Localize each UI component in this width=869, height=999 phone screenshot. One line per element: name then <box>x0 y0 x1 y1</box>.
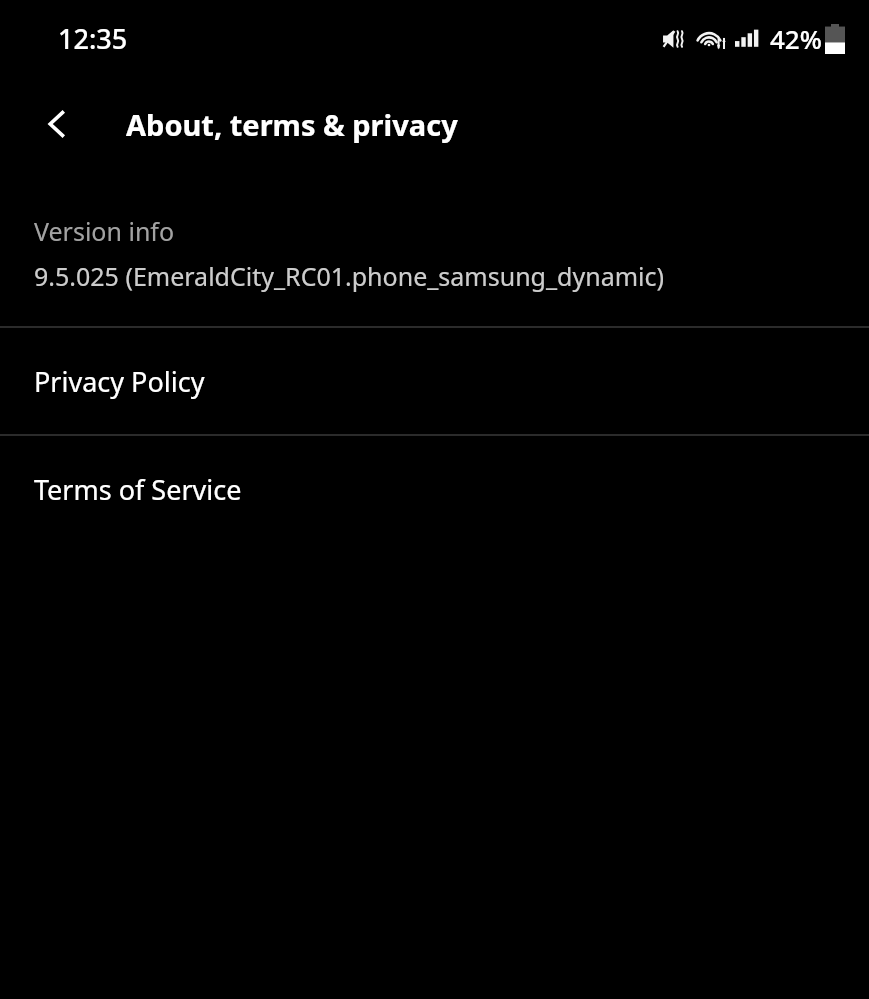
staticText: Privacy Policy <box>34 363 205 400</box>
staticText: 12:35 <box>58 20 128 57</box>
button[interactable]: Privacy Policy <box>0 328 869 434</box>
staticText: About, terms & privacy <box>126 105 458 144</box>
staticText: 42% <box>770 21 822 56</box>
staticText: Version info <box>34 214 175 248</box>
staticText: Terms of Service <box>34 471 242 508</box>
button[interactable]: Terms of Service <box>0 436 869 542</box>
staticText: 9.5.025 (EmeraldCity_RC01.phone_samsung_… <box>34 259 664 293</box>
button[interactable]: Back <box>22 89 92 159</box>
